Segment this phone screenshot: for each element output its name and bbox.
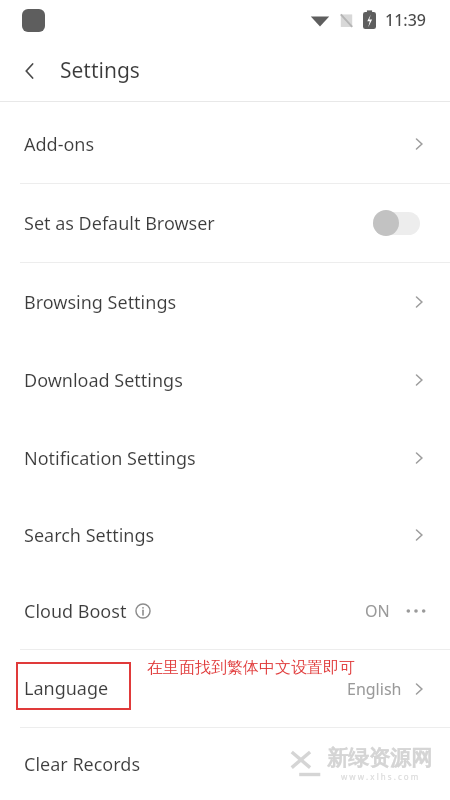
button[interactable]: Browsing Settings — [0, 263, 450, 341]
button[interactable]: More options — [404, 599, 428, 623]
staticText: English — [347, 678, 402, 700]
button[interactable]: Add-ons — [0, 105, 450, 183]
staticText: 在里面找到繁体中文设置即可 — [147, 658, 355, 678]
button[interactable]: Cloud Boost — [0, 573, 450, 649]
button[interactable]: Download Settings — [0, 341, 450, 419]
button[interactable]: Clear Records — [0, 728, 450, 800]
button[interactable]: Language — [0, 650, 450, 727]
button[interactable]: Notification Settings — [0, 419, 450, 497]
button[interactable]: Back — [0, 40, 60, 101]
staticText: Download Settings — [24, 368, 183, 393]
staticText: Clear Records — [24, 752, 141, 777]
staticText: Cloud Boost — [24, 599, 127, 624]
staticText: Browsing Settings — [24, 290, 177, 315]
staticText: Set as Default Browser — [24, 211, 215, 236]
staticText: 11:39 — [385, 9, 426, 31]
staticText: Notification Settings — [24, 446, 196, 471]
staticText: w w w . x l h s . c o m — [341, 771, 419, 782]
button[interactable]: Search Settings — [0, 497, 450, 573]
button[interactable]: Set as Default Browser — [0, 184, 450, 262]
staticText: Add-ons — [24, 132, 95, 157]
staticText: Language — [24, 676, 109, 701]
staticText: Search Settings — [24, 523, 155, 548]
staticText: ON — [365, 600, 390, 622]
other: Set as Default Browser toggle — [373, 210, 420, 236]
staticText: 新绿资源网 — [327, 745, 432, 771]
staticText: Settings — [60, 56, 140, 85]
